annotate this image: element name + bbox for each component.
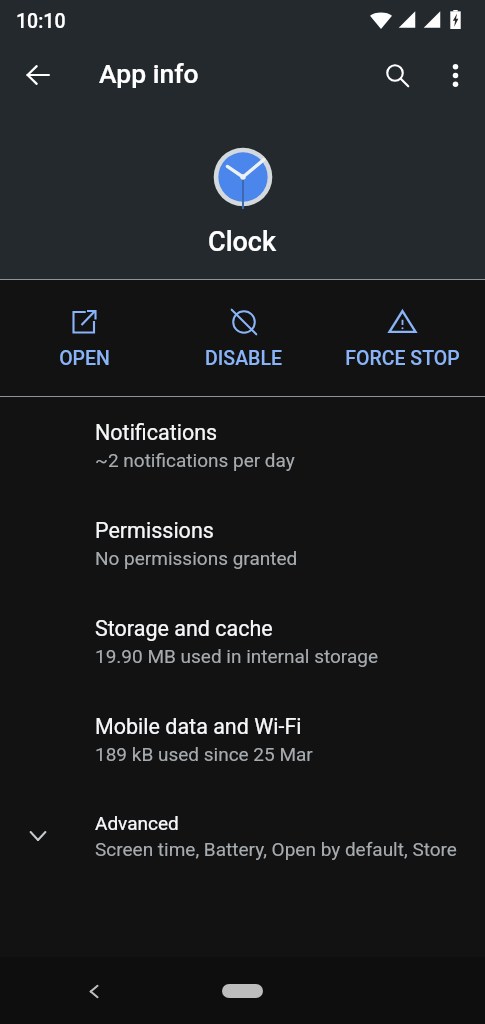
button[interactable]: FORCE STOP	[323, 280, 482, 396]
button[interactable]: Storage and cache	[0, 602, 485, 700]
staticText: Notifications	[95, 420, 218, 445]
button[interactable]: OPEN	[5, 280, 164, 396]
button[interactable]: More options	[431, 51, 479, 99]
staticText: 10:10	[16, 10, 66, 33]
button[interactable]: DISABLE	[164, 280, 323, 396]
staticText: OPEN	[59, 347, 110, 370]
staticText: DISABLE	[205, 347, 282, 370]
button[interactable]: Mobile data and Wi-Fi	[0, 700, 485, 798]
staticText: App info	[99, 58, 199, 89]
button[interactable]: Back	[76, 973, 112, 1009]
staticText: Advanced	[95, 812, 179, 834]
button[interactable]: Back	[14, 51, 62, 99]
button[interactable]: Permissions	[0, 504, 485, 602]
staticText: Mobile data and Wi-Fi	[95, 714, 302, 739]
staticText: Storage and cache	[95, 616, 273, 641]
button[interactable]: Notifications	[0, 406, 485, 504]
button[interactable]: Advanced	[0, 798, 485, 896]
staticText: 19.90 MB used in internal storage	[95, 645, 379, 667]
staticText: Clock	[208, 226, 277, 258]
staticText: ~2 notifications per day	[95, 449, 295, 471]
button[interactable]: Search	[373, 51, 421, 99]
staticText: No permissions granted	[95, 547, 298, 569]
staticText: Screen time, Battery, Open by default, S…	[95, 838, 457, 860]
staticText: Permissions	[95, 518, 214, 543]
staticText: 189 kB used since 25 Mar	[95, 743, 313, 765]
staticText: FORCE STOP	[345, 347, 460, 370]
button[interactable]: Home	[222, 984, 263, 998]
